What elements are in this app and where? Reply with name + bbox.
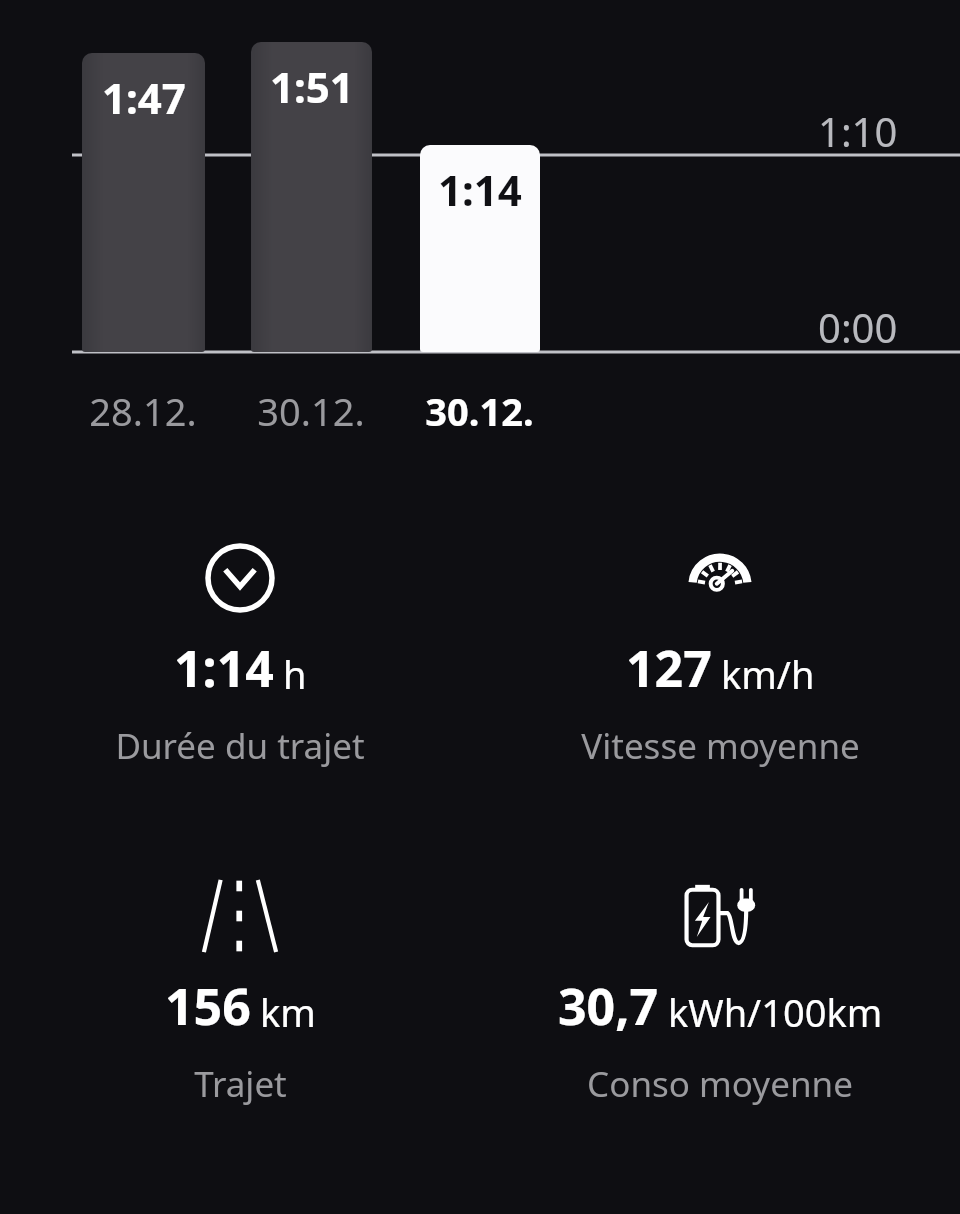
button[interactable]: 1:47	[82, 53, 205, 352]
staticText: 30.12.	[425, 385, 534, 437]
staticText: 30,7	[558, 972, 659, 1040]
staticText: 156	[165, 972, 251, 1040]
staticText: 1:51	[270, 58, 354, 115]
staticText: 1:14	[438, 161, 522, 218]
button[interactable]: 1:51	[251, 42, 372, 352]
staticText: km	[260, 986, 316, 1038]
staticText: Vitesse moyenne	[581, 722, 860, 770]
button[interactable]: Average consumption	[480, 878, 960, 1108]
staticText: kWh/100km	[668, 986, 883, 1038]
staticText: 127	[626, 634, 712, 702]
button[interactable]: Average speed	[480, 540, 960, 770]
button[interactable]: 30.12.	[211, 382, 411, 440]
button[interactable]: 28.12.	[43, 382, 243, 440]
button[interactable]: Trip distance	[0, 878, 480, 1108]
staticText: Durée du trajet	[115, 722, 365, 770]
button[interactable]: Trip duration	[0, 540, 480, 770]
staticText: 1:10	[818, 104, 898, 158]
staticText: h	[283, 648, 307, 700]
staticText: 28.12.	[89, 385, 197, 437]
staticText: Trajet	[194, 1060, 287, 1108]
staticText: 0:00	[818, 300, 898, 354]
staticText: 30.12.	[257, 385, 365, 437]
staticText: 1:47	[102, 69, 186, 126]
staticText: 1:14	[174, 634, 274, 702]
button[interactable]: 1:14	[420, 145, 540, 352]
staticText: km/h	[721, 648, 815, 700]
button[interactable]: 30.12.	[379, 382, 579, 440]
staticText: Conso moyenne	[587, 1060, 853, 1108]
